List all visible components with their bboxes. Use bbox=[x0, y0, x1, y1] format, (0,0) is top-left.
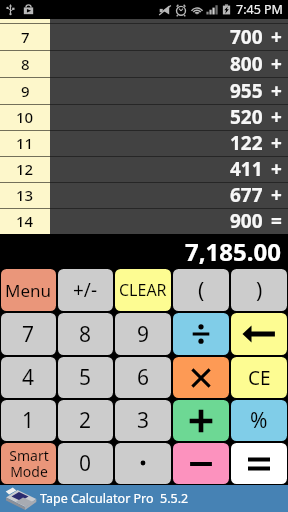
staticText: + bbox=[271, 51, 282, 77]
staticText: 677 bbox=[230, 182, 263, 208]
staticText: CE bbox=[248, 365, 271, 391]
button[interactable]: Multiply bbox=[173, 357, 229, 398]
button[interactable]: 12 bbox=[0, 156, 288, 182]
button[interactable]: +/- bbox=[58, 269, 113, 311]
staticText: ) bbox=[256, 276, 263, 305]
staticText: + bbox=[271, 104, 282, 130]
staticText: 3 bbox=[137, 406, 150, 435]
button[interactable]: 2 bbox=[58, 400, 113, 441]
button[interactable]: 11 bbox=[0, 130, 288, 156]
staticText: 7 bbox=[22, 320, 35, 349]
button[interactable]: Equals bbox=[231, 443, 287, 484]
staticText: 12 bbox=[16, 159, 34, 179]
button[interactable]: 5 bbox=[58, 357, 113, 398]
staticText: 700 bbox=[230, 24, 263, 50]
staticText: 7,185.00 bbox=[185, 235, 281, 268]
staticText: 13 bbox=[16, 185, 34, 205]
button[interactable]: 14 bbox=[0, 208, 288, 234]
button[interactable]: Subtract bbox=[173, 443, 229, 484]
staticText: 4 bbox=[22, 363, 35, 392]
button[interactable]: Smart Mode bbox=[1, 443, 56, 484]
button[interactable]: 8 bbox=[0, 50, 288, 77]
button[interactable]: Add bbox=[173, 400, 229, 441]
staticText: 11 bbox=[16, 133, 34, 153]
button[interactable]: Tape Calculator Pro 5.5.2 bbox=[0, 485, 288, 512]
staticText: 7 bbox=[21, 27, 30, 47]
staticText: 800 bbox=[230, 51, 263, 77]
staticText: 122 bbox=[230, 130, 263, 156]
button[interactable]: ( bbox=[173, 269, 229, 311]
staticText: + bbox=[271, 24, 282, 50]
button[interactable]: Backspace bbox=[231, 313, 287, 355]
staticText: 10 bbox=[16, 107, 34, 127]
button[interactable]: 0 bbox=[58, 443, 113, 484]
staticText: 2 bbox=[79, 406, 92, 435]
staticText: 8 bbox=[21, 54, 30, 74]
button[interactable]: % bbox=[231, 400, 287, 441]
staticText: 14 bbox=[16, 211, 34, 231]
button[interactable]: 7 bbox=[1, 313, 56, 355]
staticText: 6 bbox=[137, 363, 150, 392]
button[interactable]: Menu bbox=[1, 269, 56, 311]
button[interactable]: 13 bbox=[0, 182, 288, 208]
staticText: 7:45 PM bbox=[236, 1, 283, 18]
staticText: 411 bbox=[230, 156, 263, 182]
staticText: CLEAR bbox=[119, 279, 167, 301]
staticText: + bbox=[271, 78, 282, 104]
staticText: 9 bbox=[21, 81, 30, 101]
staticText: ( bbox=[198, 276, 205, 305]
staticText: Tape Calculator Pro 5.5.2 bbox=[40, 490, 189, 507]
button[interactable]: 9 bbox=[0, 77, 288, 104]
staticText: Menu bbox=[5, 279, 52, 302]
staticText: 9 bbox=[137, 320, 150, 349]
staticText: +/- bbox=[73, 277, 98, 303]
staticText: 955 bbox=[230, 78, 263, 104]
button[interactable]: 7 bbox=[0, 23, 288, 50]
button[interactable]: 1 bbox=[1, 400, 56, 441]
button[interactable]: 3 bbox=[115, 400, 171, 441]
button[interactable]: 9 bbox=[115, 313, 171, 355]
staticText: 900 bbox=[230, 208, 263, 234]
button[interactable]: 8 bbox=[58, 313, 113, 355]
staticText: + bbox=[271, 130, 282, 156]
staticText: 1 bbox=[22, 406, 35, 435]
staticText: % bbox=[250, 406, 268, 435]
staticText: Smart Mode bbox=[9, 446, 49, 481]
button[interactable]: 4 bbox=[1, 357, 56, 398]
button[interactable]: 10 bbox=[0, 104, 288, 130]
button[interactable]: CLEAR bbox=[115, 269, 171, 311]
button[interactable]: ) bbox=[231, 269, 287, 311]
staticText: 5 bbox=[79, 363, 92, 392]
button[interactable]: 6 bbox=[115, 357, 171, 398]
button[interactable]: Decimal point bbox=[115, 443, 171, 484]
staticText: 8 bbox=[79, 320, 92, 349]
button[interactable]: CE bbox=[231, 357, 287, 398]
staticText: 0 bbox=[79, 449, 92, 478]
staticText: = bbox=[271, 208, 282, 234]
staticText: + bbox=[271, 182, 282, 208]
staticText: + bbox=[271, 156, 282, 182]
button[interactable]: Divide bbox=[173, 313, 229, 355]
staticText: 520 bbox=[230, 104, 263, 130]
